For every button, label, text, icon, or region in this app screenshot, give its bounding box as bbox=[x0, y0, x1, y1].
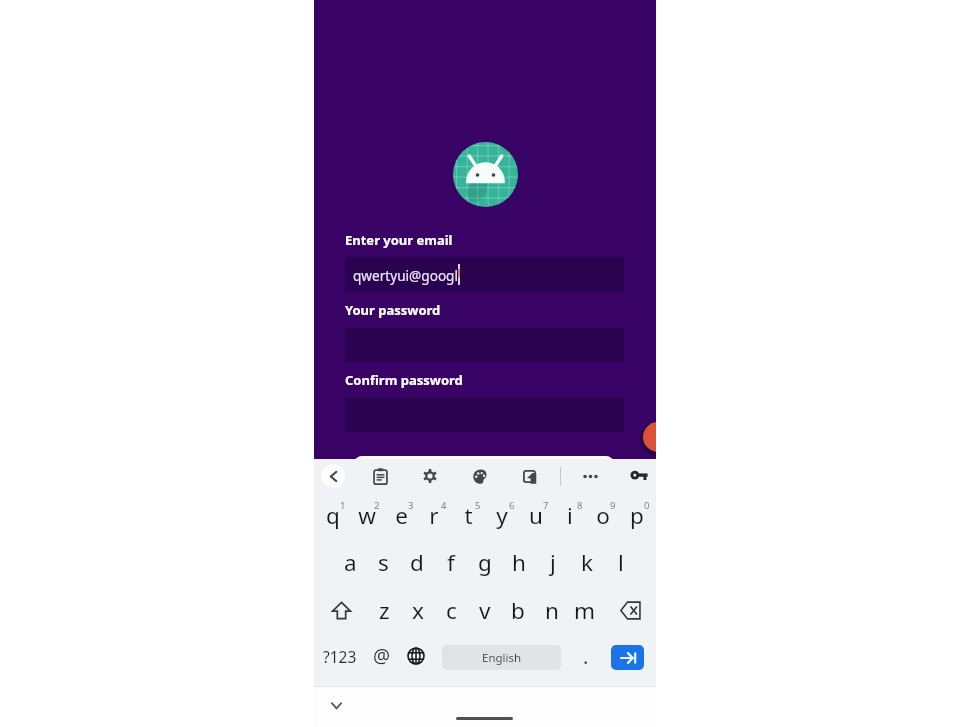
staticText: 7 bbox=[543, 499, 549, 512]
staticText: Enter your email bbox=[345, 231, 453, 249]
button[interactable]: q bbox=[316, 491, 350, 537]
button[interactable]: v bbox=[468, 587, 502, 633]
button[interactable]: b bbox=[501, 587, 535, 633]
staticText: q bbox=[326, 500, 340, 531]
staticText: o bbox=[596, 500, 610, 531]
button[interactable]: t bbox=[451, 491, 485, 537]
button[interactable]: a bbox=[333, 539, 367, 585]
staticText: qwertyui@googl bbox=[353, 266, 458, 285]
staticText: 9 bbox=[610, 499, 616, 512]
staticText: c bbox=[446, 595, 457, 626]
staticText: 2 bbox=[374, 499, 380, 512]
staticText: m bbox=[574, 595, 596, 626]
button[interactable]: l bbox=[604, 539, 638, 585]
button[interactable]: i bbox=[553, 491, 587, 537]
staticText: ?123 bbox=[323, 646, 357, 667]
staticText: 1 bbox=[340, 499, 346, 512]
button[interactable]: n bbox=[535, 587, 569, 633]
button[interactable]: Hide keyboard bbox=[324, 693, 348, 717]
button[interactable]: o bbox=[586, 491, 620, 537]
staticText: 0 bbox=[644, 499, 650, 512]
staticText: u bbox=[529, 500, 543, 531]
button[interactable]: y bbox=[485, 491, 519, 537]
staticText: n bbox=[545, 595, 559, 626]
staticText: s bbox=[378, 547, 389, 578]
button[interactable]: w bbox=[350, 491, 384, 537]
staticText: Your password bbox=[345, 301, 441, 319]
button[interactable]: f bbox=[434, 539, 468, 585]
button[interactable]: Theme bbox=[467, 463, 493, 489]
button[interactable]: p bbox=[620, 491, 654, 537]
staticText: . bbox=[583, 643, 589, 670]
staticText: 3 bbox=[408, 499, 414, 512]
button[interactable]: u bbox=[519, 491, 553, 537]
staticText: t bbox=[464, 500, 473, 531]
button[interactable]: c bbox=[434, 587, 468, 633]
button[interactable]: Back bbox=[321, 464, 345, 488]
button[interactable]: English bbox=[442, 645, 561, 670]
staticText: 5 bbox=[475, 499, 481, 512]
button[interactable]: . bbox=[569, 633, 603, 679]
staticText: y bbox=[496, 500, 508, 531]
button[interactable]: m bbox=[568, 587, 602, 633]
button[interactable]: g bbox=[468, 539, 502, 585]
button[interactable]: Shift bbox=[319, 587, 363, 633]
button[interactable]: Backspace bbox=[608, 587, 652, 633]
button[interactable]: x bbox=[401, 587, 435, 633]
staticText: d bbox=[410, 547, 424, 578]
button[interactable]: Passwords bbox=[626, 463, 652, 489]
staticText: f bbox=[447, 547, 455, 578]
staticText: h bbox=[512, 547, 526, 578]
staticText: j bbox=[550, 547, 556, 578]
button[interactable]: qwertyui@googl bbox=[345, 257, 624, 292]
button[interactable]: Next bbox=[611, 645, 644, 670]
staticText: 8 bbox=[577, 499, 583, 512]
staticText: l bbox=[618, 547, 624, 578]
staticText: @ bbox=[373, 643, 391, 669]
button[interactable]: More options bbox=[577, 463, 603, 489]
button[interactable]: Settings bbox=[417, 463, 443, 489]
staticText: Confirm password bbox=[345, 371, 463, 389]
button[interactable]: r bbox=[417, 491, 451, 537]
staticText: 6 bbox=[509, 499, 515, 512]
staticText: e bbox=[395, 500, 408, 531]
staticText: x bbox=[412, 595, 424, 626]
button[interactable]: ?123 bbox=[318, 633, 362, 679]
staticText: k bbox=[581, 547, 594, 578]
button[interactable]: Add bbox=[636, 415, 656, 459]
button[interactable]: s bbox=[366, 539, 400, 585]
staticText: z bbox=[379, 595, 390, 626]
staticText: i bbox=[567, 500, 573, 531]
staticText: g bbox=[478, 547, 492, 578]
button[interactable]: h bbox=[502, 539, 536, 585]
button[interactable]: Resize keyboard bbox=[516, 463, 542, 489]
button[interactable]: j bbox=[536, 539, 570, 585]
button[interactable]: z bbox=[367, 587, 401, 633]
staticText: b bbox=[511, 595, 525, 626]
staticText: 4 bbox=[441, 499, 447, 512]
staticText: v bbox=[479, 595, 491, 626]
staticText: w bbox=[358, 500, 376, 531]
button[interactable]: Clipboard bbox=[367, 463, 393, 489]
staticText: a bbox=[344, 547, 357, 578]
staticText: p bbox=[630, 500, 644, 531]
button[interactable]: d bbox=[400, 539, 434, 585]
staticText: r bbox=[429, 500, 439, 531]
button[interactable]: k bbox=[570, 539, 604, 585]
button[interactable]: e bbox=[384, 491, 418, 537]
staticText: English bbox=[482, 650, 522, 666]
button[interactable]: Switch language bbox=[399, 633, 433, 679]
button[interactable]: @ bbox=[365, 633, 399, 679]
